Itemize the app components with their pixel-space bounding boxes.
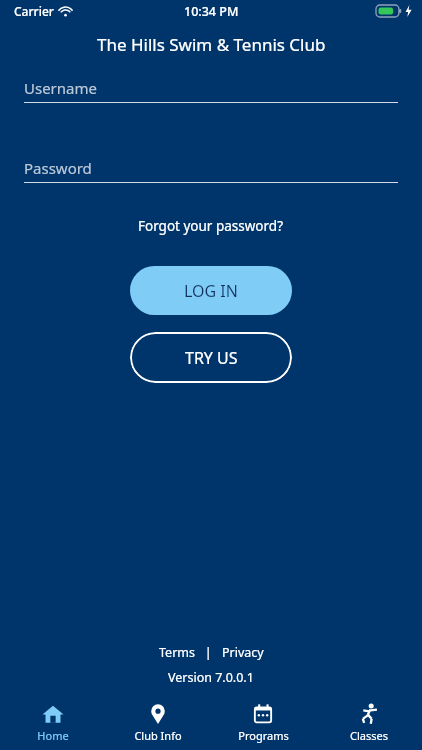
staticText: Home [37, 728, 69, 743]
button[interactable]: TRY US [130, 332, 292, 383]
staticText: Programs [238, 728, 289, 743]
button[interactable]: Privacy [222, 644, 264, 661]
button[interactable]: Terms [159, 644, 195, 661]
staticText: Username [24, 78, 97, 98]
button[interactable]: Username [24, 78, 398, 103]
staticText: Carrier [14, 3, 54, 19]
staticText: Terms [159, 644, 195, 661]
staticText: Classes [350, 728, 388, 743]
staticText: Version 7.0.0.1 [168, 669, 254, 686]
staticText: The Hills Swim & Tennis Club [97, 33, 326, 56]
staticText: Privacy [222, 644, 264, 661]
button[interactable]: Home [0, 700, 105, 746]
button[interactable]: Forgot your password? [0, 217, 422, 235]
staticText: TRY US [185, 347, 238, 369]
staticText: Club Info [134, 728, 182, 743]
staticText: Forgot your password? [138, 217, 284, 235]
button[interactable]: Classes [316, 700, 422, 746]
button[interactable]: Club Info [105, 700, 210, 746]
staticText: Password [24, 158, 92, 178]
button[interactable]: LOG IN [130, 266, 292, 315]
button[interactable]: Programs [210, 700, 316, 746]
staticText: LOG IN [184, 280, 238, 302]
button[interactable]: Password [24, 158, 398, 183]
staticText: 10:34 PM [184, 3, 239, 20]
staticText: | [195, 644, 222, 661]
